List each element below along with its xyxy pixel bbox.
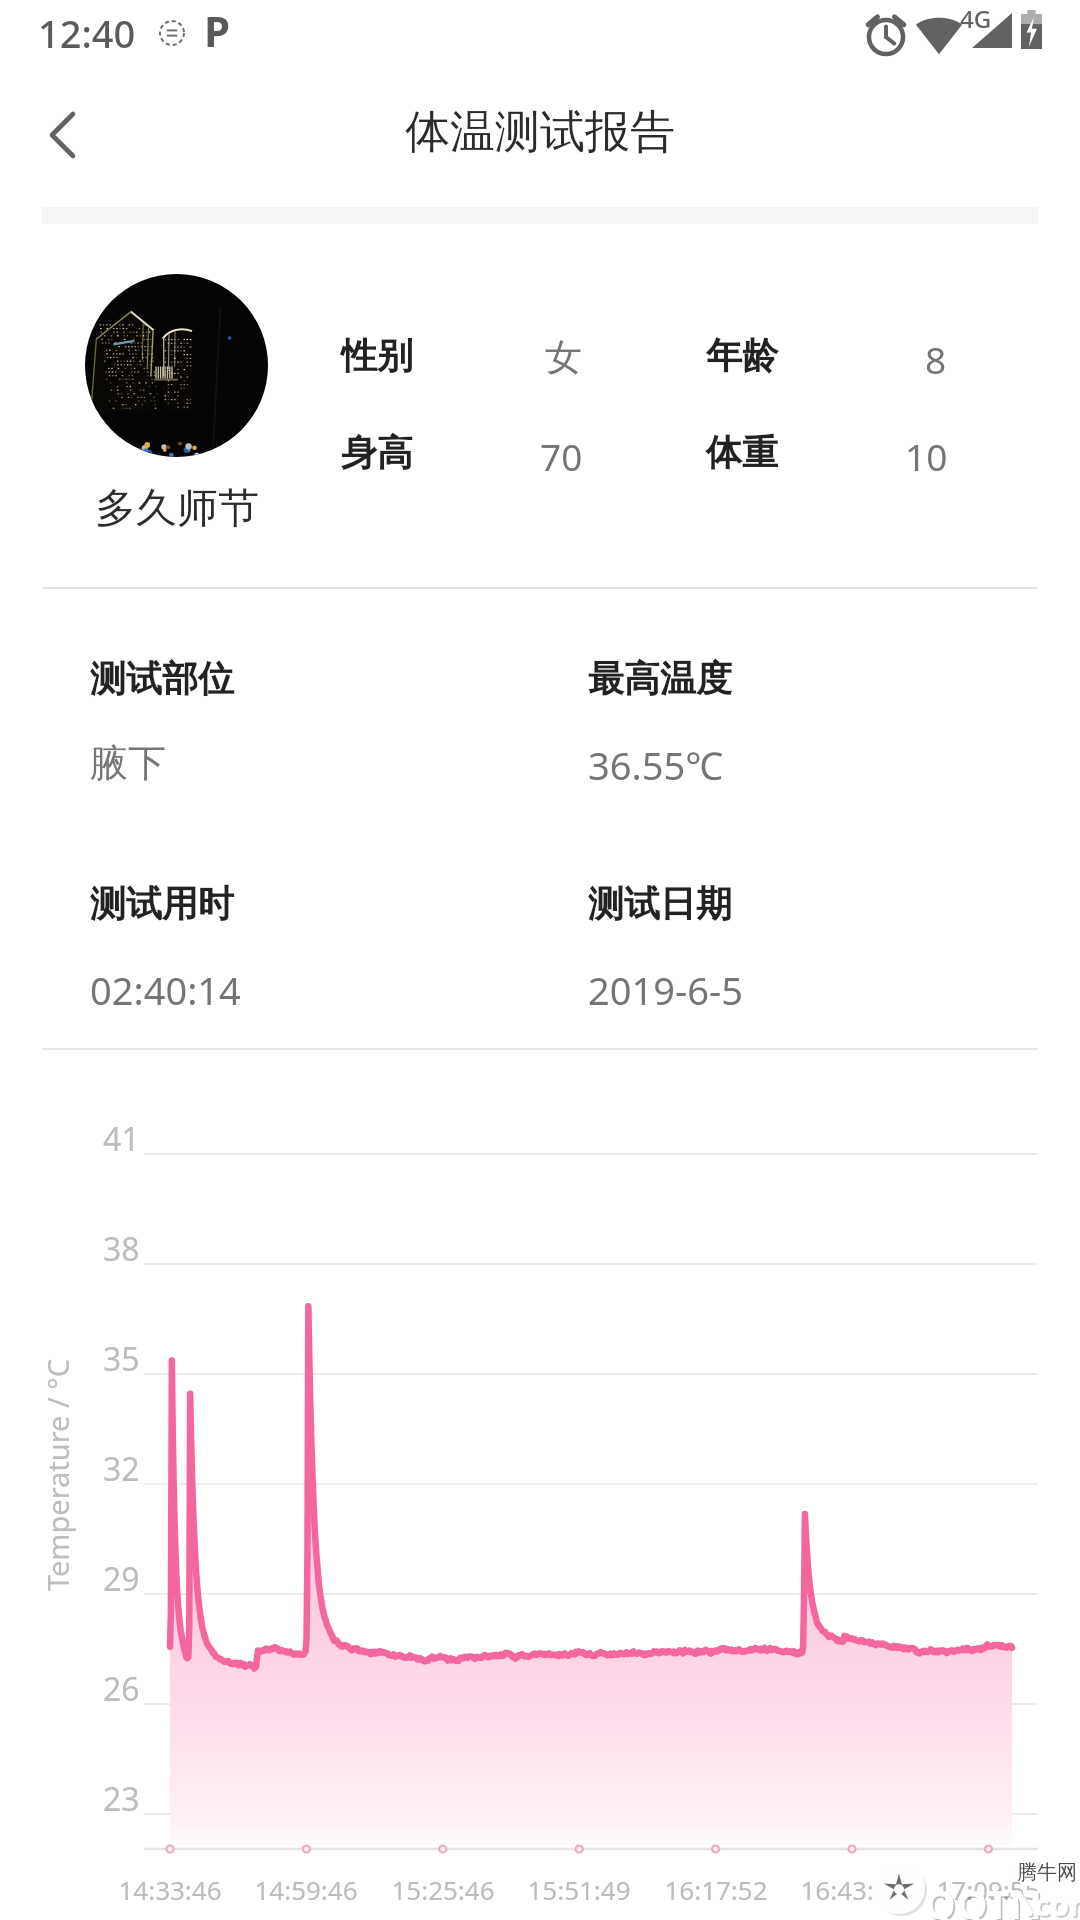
staticText: 38: [103, 1227, 140, 1271]
staticText: 15:25:46: [363, 1872, 523, 1907]
staticText: 41: [103, 1117, 140, 1161]
button[interactable]: 性别: [331, 319, 651, 385]
staticText: P: [204, 2, 231, 59]
staticText: 最高温度: [588, 656, 732, 701]
staticText: 14:33:46: [90, 1872, 250, 1907]
staticText: 70: [540, 431, 583, 481]
staticText: 10: [905, 431, 948, 481]
staticText: QQTN: [926, 1878, 1044, 1920]
staticText: 26: [103, 1667, 140, 1711]
staticText: 15:51:49: [499, 1872, 659, 1907]
staticText: 测试日期: [588, 881, 732, 926]
staticText: 36.55℃: [588, 739, 723, 791]
staticText: 年龄: [706, 333, 778, 378]
staticText: 2019-6-5: [588, 964, 743, 1016]
button[interactable]: Back: [18, 94, 108, 184]
staticText: .com: [1025, 1883, 1080, 1920]
staticText: 02:40:14: [90, 964, 241, 1016]
staticText: 体温测试报告: [0, 104, 1080, 161]
button[interactable]: 测试用时: [80, 867, 530, 1017]
staticText: 腾牛网: [1014, 1860, 1080, 1885]
staticText: 35: [103, 1337, 140, 1381]
button[interactable]: 体重: [696, 416, 1016, 482]
staticText: 29: [103, 1557, 140, 1601]
staticText: 23: [103, 1777, 140, 1821]
button[interactable]: 测试部位: [80, 642, 530, 792]
staticText: .com: [1027, 1885, 1080, 1920]
button[interactable]: 测试日期: [578, 867, 1028, 1017]
staticText: 4G: [960, 2, 992, 35]
button[interactable]: Profile photo: [85, 274, 268, 457]
staticText: 8: [925, 334, 947, 384]
staticText: 12:40: [38, 7, 136, 59]
staticText: 32: [103, 1447, 140, 1491]
staticText: 体重: [706, 430, 778, 475]
button[interactable]: 身高: [331, 416, 651, 482]
staticText: 测试部位: [90, 656, 234, 701]
staticText: 女: [545, 334, 582, 381]
staticText: QQTN: [924, 1876, 1042, 1920]
staticText: 17:09:55: [908, 1872, 1068, 1907]
staticText: Temperature / °C: [38, 1325, 77, 1625]
staticText: 14:59:46: [226, 1872, 386, 1907]
staticText: 性别: [341, 333, 413, 378]
button[interactable]: 最高温度: [578, 642, 1028, 792]
staticText: 16:17:52: [636, 1872, 796, 1907]
staticText: 16:43:52: [772, 1872, 932, 1907]
staticText: 多久师节: [95, 483, 259, 535]
staticText: 测试用时: [90, 881, 234, 926]
staticText: 身高: [341, 430, 413, 475]
staticText: 腋下: [90, 739, 166, 787]
button[interactable]: 年龄: [696, 319, 1016, 385]
